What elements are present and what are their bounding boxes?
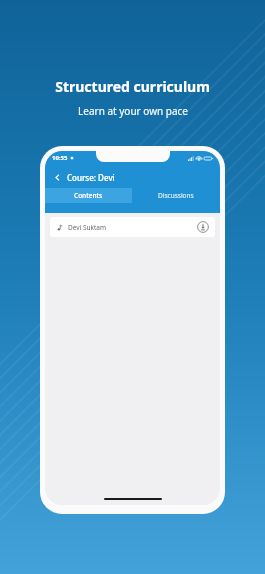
staticText: Contents bbox=[74, 191, 103, 200]
button[interactable]: Download bbox=[197, 221, 209, 233]
button[interactable]: Devi Suktam bbox=[50, 217, 215, 237]
button[interactable]: Back bbox=[51, 171, 64, 184]
staticText: Structured curriculum bbox=[55, 77, 210, 96]
staticText: Learn at your own pace bbox=[78, 104, 188, 118]
button[interactable]: Contents bbox=[45, 188, 132, 203]
staticText: Discussions bbox=[158, 191, 194, 200]
staticText: 10:55 bbox=[52, 154, 68, 162]
staticText: Devi Suktam bbox=[68, 223, 107, 232]
staticText: Course: Devi bbox=[67, 172, 115, 183]
button[interactable]: Discussions bbox=[132, 188, 220, 203]
